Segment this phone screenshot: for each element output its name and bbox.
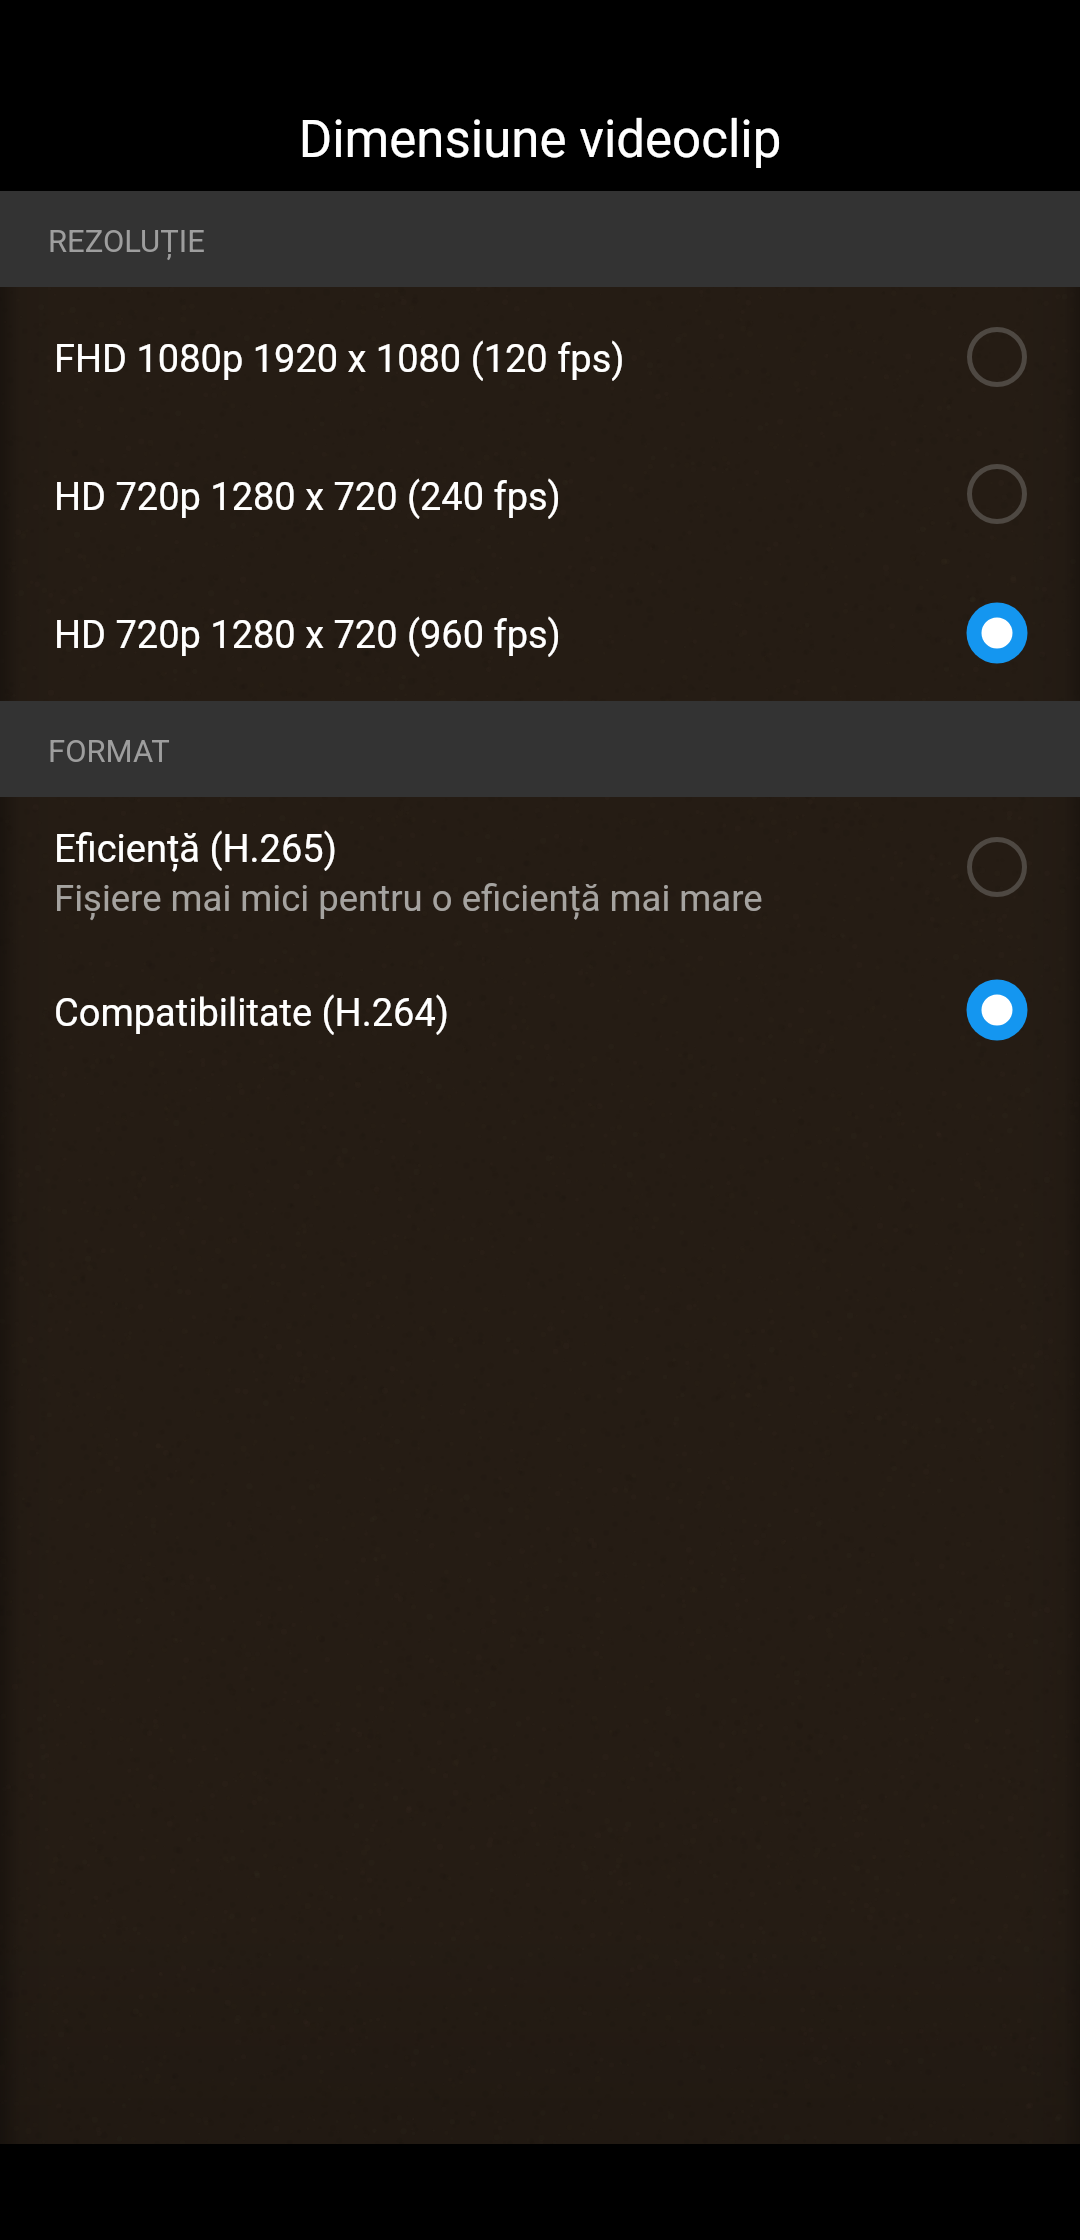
staticText: Fișiere mai mici pentru o eficiență mai … [54,877,763,920]
other: Not selected [957,827,1037,907]
staticText: HD 720p 1280 x 720 (960 fps) [54,613,561,658]
button[interactable]: FHD 1080p 1920 x 1080 (120 fps) [0,287,1080,425]
other: Not selected [957,454,1037,534]
button[interactable]: Eficiență (H.265) [0,797,1080,937]
staticText: Compatibilitate (H.264) [54,991,450,1036]
other: Not selected [957,317,1037,397]
button[interactable]: Compatibilitate (H.264) [0,937,1080,1083]
staticText: FORMAT [48,733,170,769]
other: Selected [957,970,1037,1050]
other: Selected [957,593,1037,673]
staticText: HD 720p 1280 x 720 (240 fps) [54,475,561,520]
staticText: Eficiență (H.265) [54,827,337,872]
staticText: FHD 1080p 1920 x 1080 (120 fps) [54,337,625,382]
button[interactable]: HD 720p 1280 x 720 (960 fps) [0,563,1080,701]
staticText: Dimensiune videoclip [0,110,1080,170]
staticText: REZOLUȚIE [48,223,205,259]
button[interactable]: HD 720p 1280 x 720 (240 fps) [0,425,1080,563]
